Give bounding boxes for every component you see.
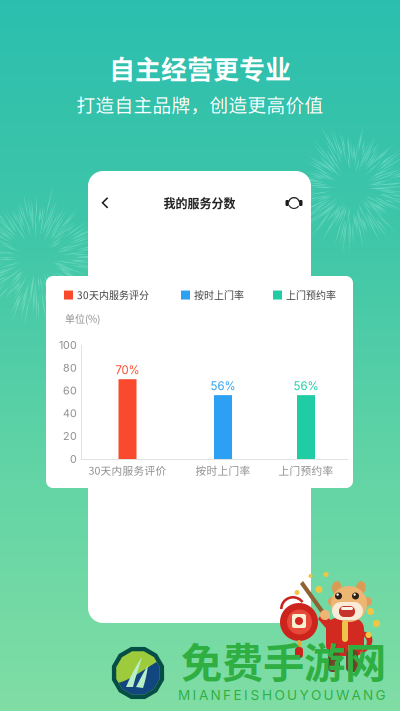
staticText: 我的服务分数 — [163, 194, 235, 212]
staticText: 上门预约率 — [278, 462, 333, 478]
staticText: 单位(%) — [65, 311, 100, 326]
staticText: 56% — [210, 379, 235, 393]
staticText: 30天内服务评分 — [77, 288, 149, 302]
staticText: 20 — [63, 430, 77, 443]
staticText: 自主经营更专业 — [109, 49, 291, 87]
button[interactable]: 返回 — [88, 184, 122, 222]
staticText: 100 — [59, 338, 77, 351]
staticText: 0 — [70, 452, 77, 465]
staticText: 打造自主品牌，创造更高价值 — [76, 90, 323, 117]
staticText: 80 — [63, 361, 77, 374]
staticText: 上门预约率 — [286, 288, 336, 302]
staticText: 56% — [293, 379, 318, 393]
staticText: 按时上门率 — [194, 288, 244, 302]
staticText: MIANFEISHOUYOUWANG — [178, 687, 385, 703]
staticText: 按时上门率 — [195, 462, 250, 478]
staticText: 40 — [63, 407, 77, 420]
staticText: 60 — [63, 384, 77, 397]
button[interactable]: 客服 — [277, 184, 311, 222]
staticText: 30天内服务评价 — [88, 462, 166, 478]
staticText: 70% — [115, 363, 139, 377]
staticText: 免费手游网 — [181, 630, 386, 690]
